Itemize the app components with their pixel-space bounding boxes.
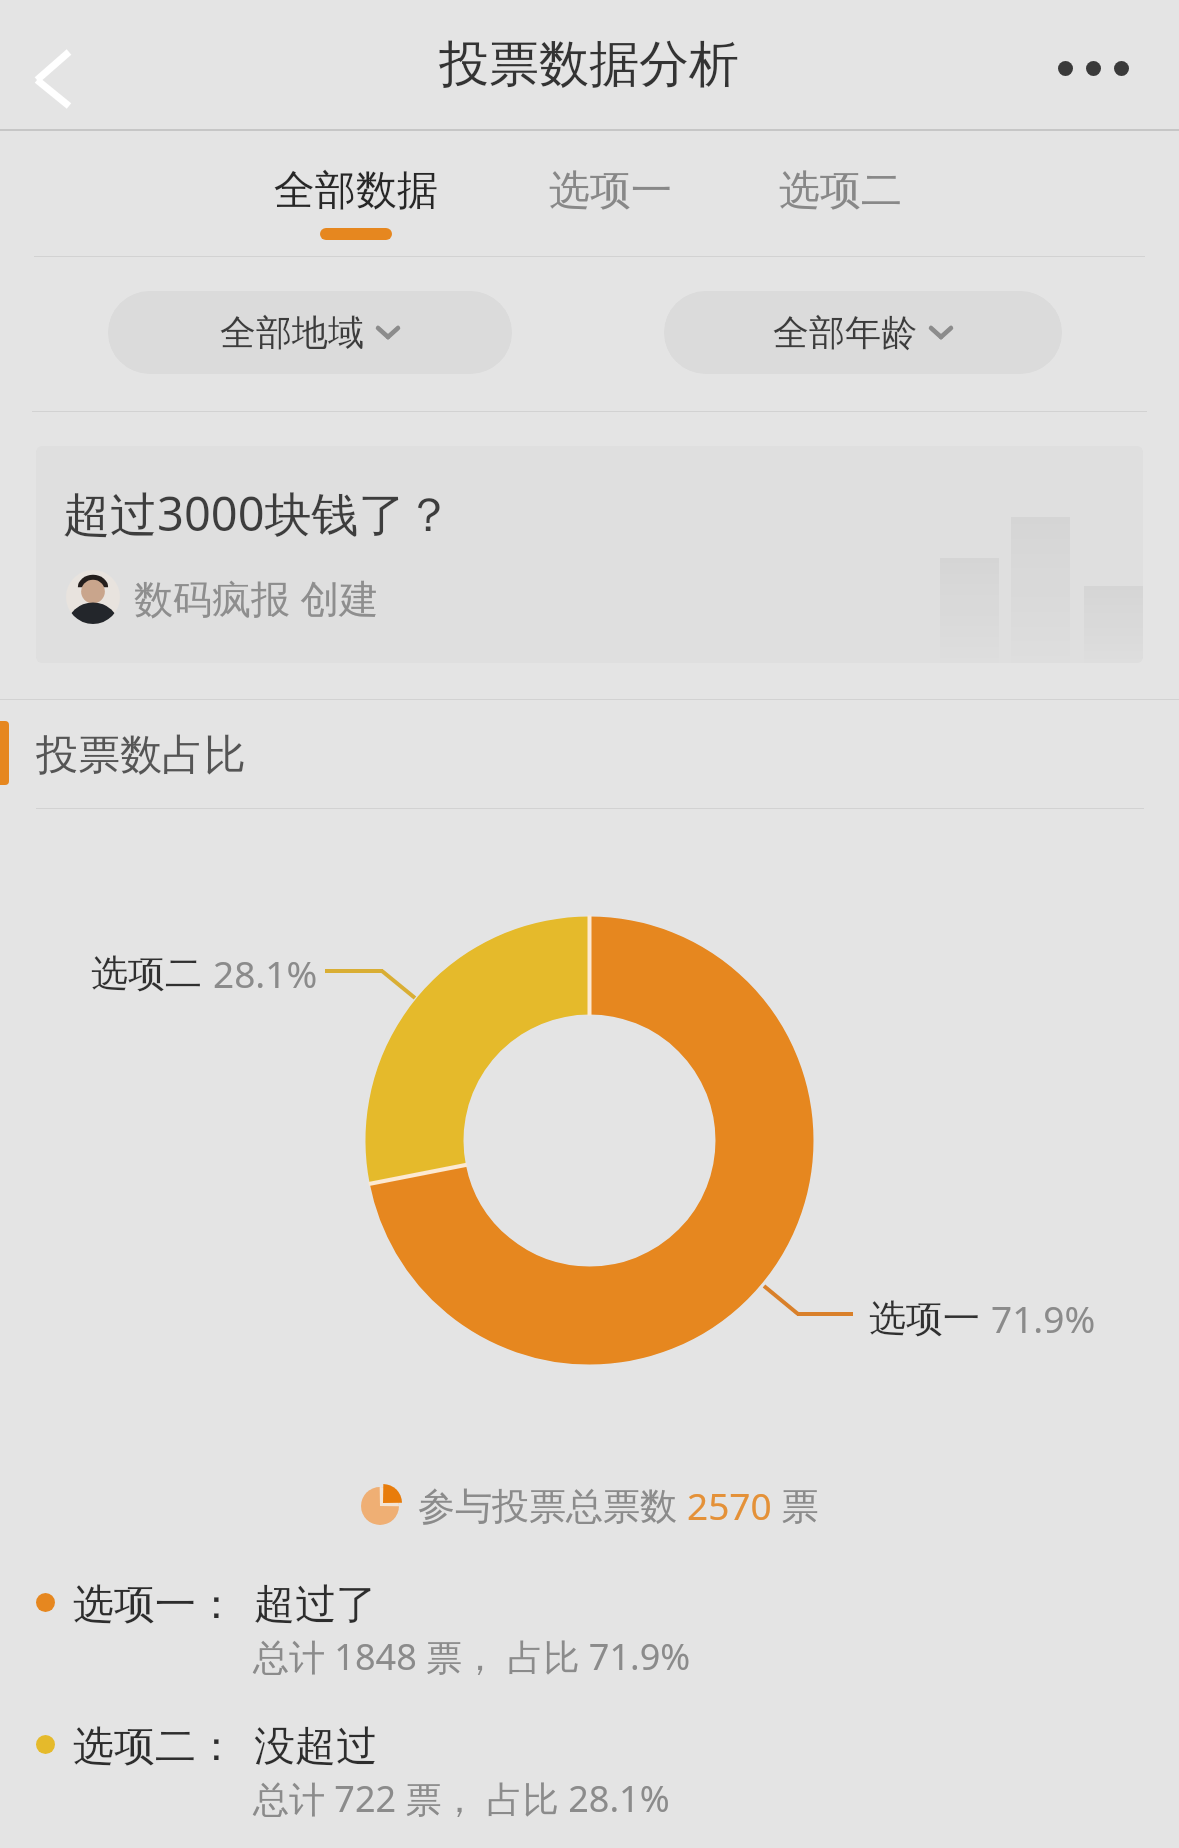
staticText: 投票数据分析 [439, 33, 739, 96]
button[interactable]: 选项一： [0, 1583, 1179, 1715]
staticText: 全部地域 [220, 310, 364, 355]
staticText: 投票数占比 [36, 729, 246, 782]
staticText: 71.9% [991, 1293, 1096, 1343]
staticText: 没超过 [254, 1721, 377, 1773]
button[interactable]: 全部年龄 [664, 291, 1062, 374]
staticText: 全部年龄 [773, 310, 917, 355]
staticText: 票 [772, 1479, 819, 1530]
staticText: 超过3000块钱了？ [63, 481, 453, 545]
staticText: 总计 722 票， 占比 28.1% [253, 1774, 670, 1823]
staticText: 选项二 [91, 950, 202, 997]
staticText: 全部数据 [274, 165, 438, 217]
staticText: 选项二： [73, 1721, 237, 1773]
button[interactable]: 全部数据 [274, 165, 438, 240]
staticText: 选项一 [549, 165, 672, 217]
staticText: 总计 1848 票， 占比 71.9% [253, 1632, 691, 1681]
button[interactable]: 选项二： [0, 1725, 1179, 1848]
button[interactable]: 超过3000块钱了？ [36, 446, 1143, 663]
staticText: 数码疯报 创建 [134, 571, 379, 624]
button[interactable]: 选项一 [549, 165, 672, 217]
button[interactable]: Back [0, 25, 106, 133]
button[interactable]: 选项二 [779, 165, 902, 217]
button[interactable]: 全部地域 [108, 291, 512, 374]
staticText: 2570 [687, 1480, 772, 1530]
button[interactable]: More options [1038, 26, 1148, 110]
staticText: 参与投票总票数 [418, 1479, 687, 1530]
staticText: 超过了 [254, 1579, 377, 1631]
staticText: 选项二 [779, 165, 902, 217]
staticText: 选项一 [869, 1295, 980, 1342]
staticText: 28.1% [213, 948, 318, 998]
staticText: 选项一： [73, 1579, 237, 1631]
